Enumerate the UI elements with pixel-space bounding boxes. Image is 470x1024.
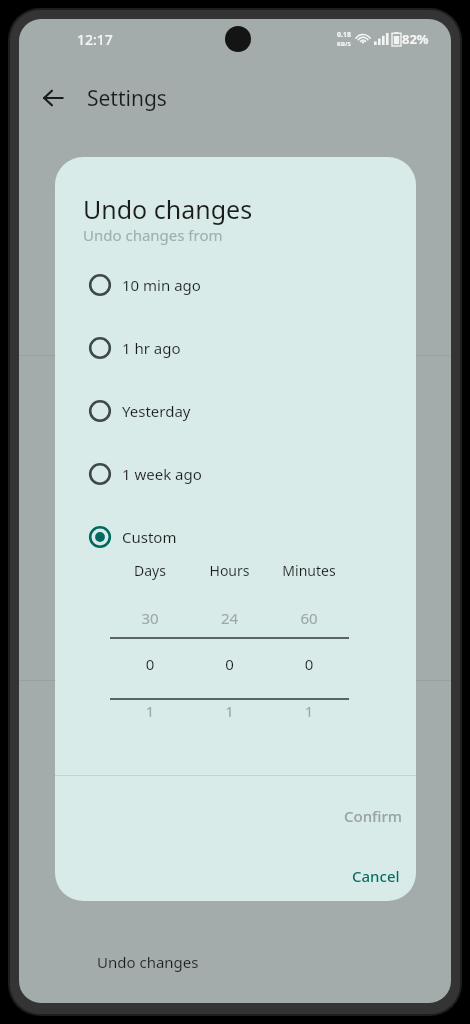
staticText: Minutes [269,561,349,580]
button[interactable]: Back [31,76,75,120]
staticText: Cancel [352,866,400,886]
staticText: 1 [110,701,190,721]
staticText: 0.18 [337,30,351,40]
staticText: Settings [87,84,167,113]
staticText: 12:17 [77,30,113,49]
staticText: KB/S [337,40,351,48]
button[interactable]: Cancel [338,857,414,895]
button[interactable]: 1 week ago [55,442,416,505]
staticText: Confirm [344,806,403,826]
staticText: Yesterday [122,401,191,421]
staticText: 0 [110,654,190,674]
button[interactable]: Confirm [330,797,416,835]
staticText: 1 hr ago [122,338,181,358]
button[interactable]: 1 hr ago [55,316,416,379]
staticText: 0 [190,654,269,674]
staticText: 1 week ago [122,464,202,484]
staticText: 0 [269,654,349,674]
staticText: Hours [190,561,269,580]
staticText: Undo changes [83,192,253,226]
staticText: 24 [190,608,269,628]
staticText: 10 min ago [122,275,201,295]
staticText: Undo changes from [83,225,223,245]
button[interactable]: Yesterday [55,379,416,442]
staticText: 30 [110,608,190,628]
button[interactable]: 10 min ago [55,253,416,316]
staticText: 82% [402,30,429,48]
staticText: Days [110,561,190,580]
staticText: 60 [269,608,349,628]
staticText: Undo changes [97,952,199,972]
button[interactable]: Custom [55,505,416,568]
staticText: Custom [122,527,177,547]
staticText: 1 [190,701,269,721]
staticText: 1 [269,701,349,721]
